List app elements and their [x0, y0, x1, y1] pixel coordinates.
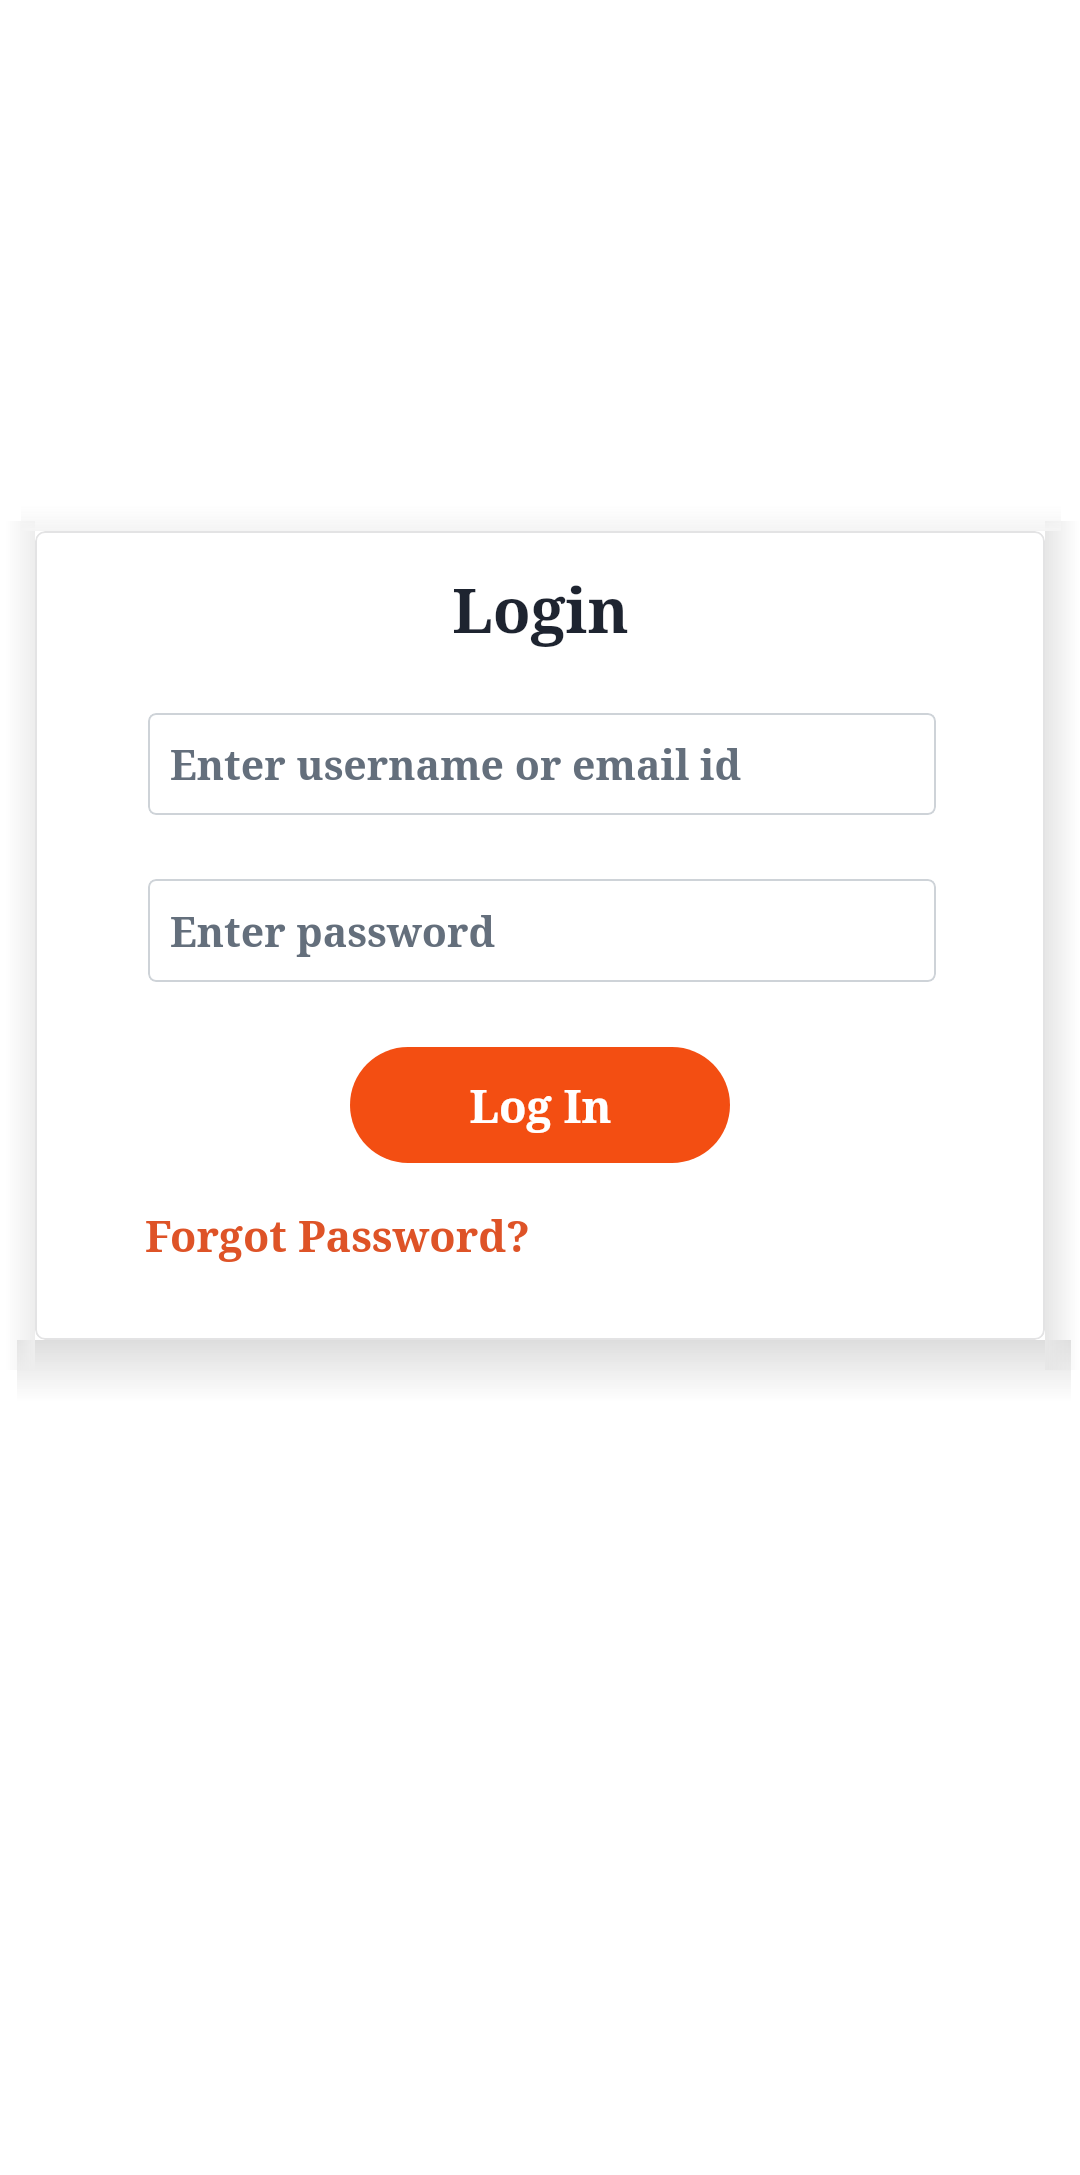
button[interactable]: Forgot Password?	[141, 1202, 534, 1269]
button[interactable]: Enter password	[148, 879, 936, 982]
staticText: Enter password	[170, 903, 496, 959]
staticText: Log In	[469, 1075, 612, 1136]
button[interactable]: Log In	[350, 1047, 730, 1163]
staticText: Enter username or email id	[170, 736, 742, 792]
staticText: Forgot Password?	[145, 1206, 530, 1265]
staticText: Login	[452, 567, 629, 651]
button[interactable]: Enter username or email id	[148, 713, 936, 815]
